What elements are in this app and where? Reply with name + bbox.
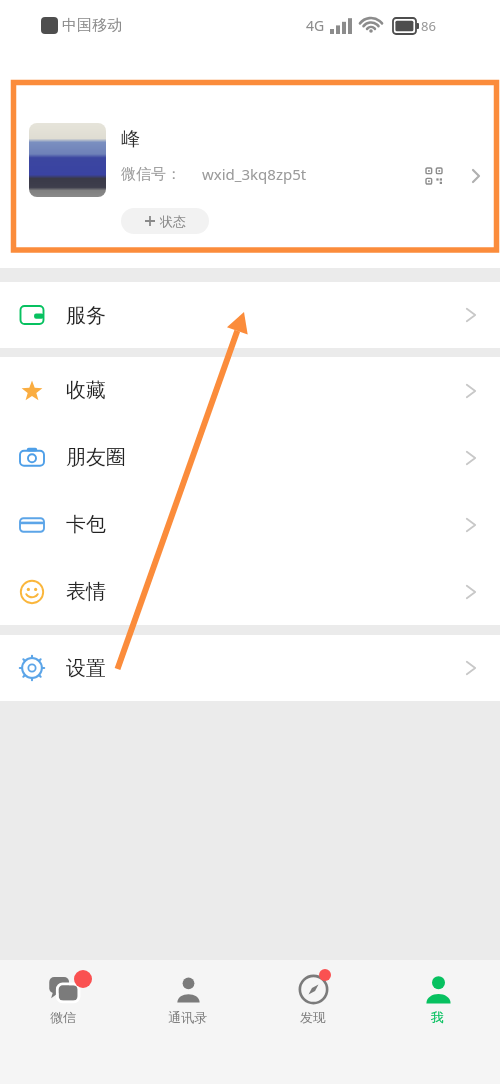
button[interactable]: 状态 xyxy=(121,208,209,234)
staticText: 我 xyxy=(431,1009,444,1025)
button[interactable]: 通讯录 xyxy=(125,972,250,1038)
button[interactable]: 卡包 xyxy=(0,491,500,558)
staticText: 服务 xyxy=(66,303,106,328)
button[interactable]: 发现 xyxy=(250,972,375,1038)
staticText: 峰 xyxy=(121,127,140,151)
button[interactable]: 表情 xyxy=(0,558,500,625)
button[interactable]: 收藏 xyxy=(0,357,500,424)
staticText: 收藏 xyxy=(66,378,106,403)
button[interactable]: Profile photo xyxy=(29,123,106,197)
staticText: 86 xyxy=(421,17,436,35)
staticText: 状态 xyxy=(160,213,186,229)
button[interactable]: 设置 xyxy=(0,635,500,701)
staticText: 中国移动 xyxy=(62,16,122,35)
button[interactable]: Open profile xyxy=(462,162,490,190)
staticText: 表情 xyxy=(66,579,106,604)
staticText: 设置 xyxy=(66,656,106,681)
button[interactable]: 微信 xyxy=(0,972,125,1038)
staticText: wxid_3kq8zp5t xyxy=(202,164,307,184)
staticText: 通讯录 xyxy=(168,1009,207,1025)
button[interactable]: 朋友圈 xyxy=(0,424,500,491)
staticText: 微信 xyxy=(50,1009,76,1025)
staticText: 微信号： xyxy=(121,165,181,184)
staticText: 朋友圈 xyxy=(66,445,126,470)
button[interactable]: My QR code xyxy=(422,164,446,188)
staticText: 卡包 xyxy=(66,512,106,537)
button[interactable]: 服务 xyxy=(0,282,500,348)
staticText: 发现 xyxy=(300,1009,326,1025)
staticText: 4G xyxy=(306,16,325,35)
button[interactable]: 我 xyxy=(375,972,500,1038)
